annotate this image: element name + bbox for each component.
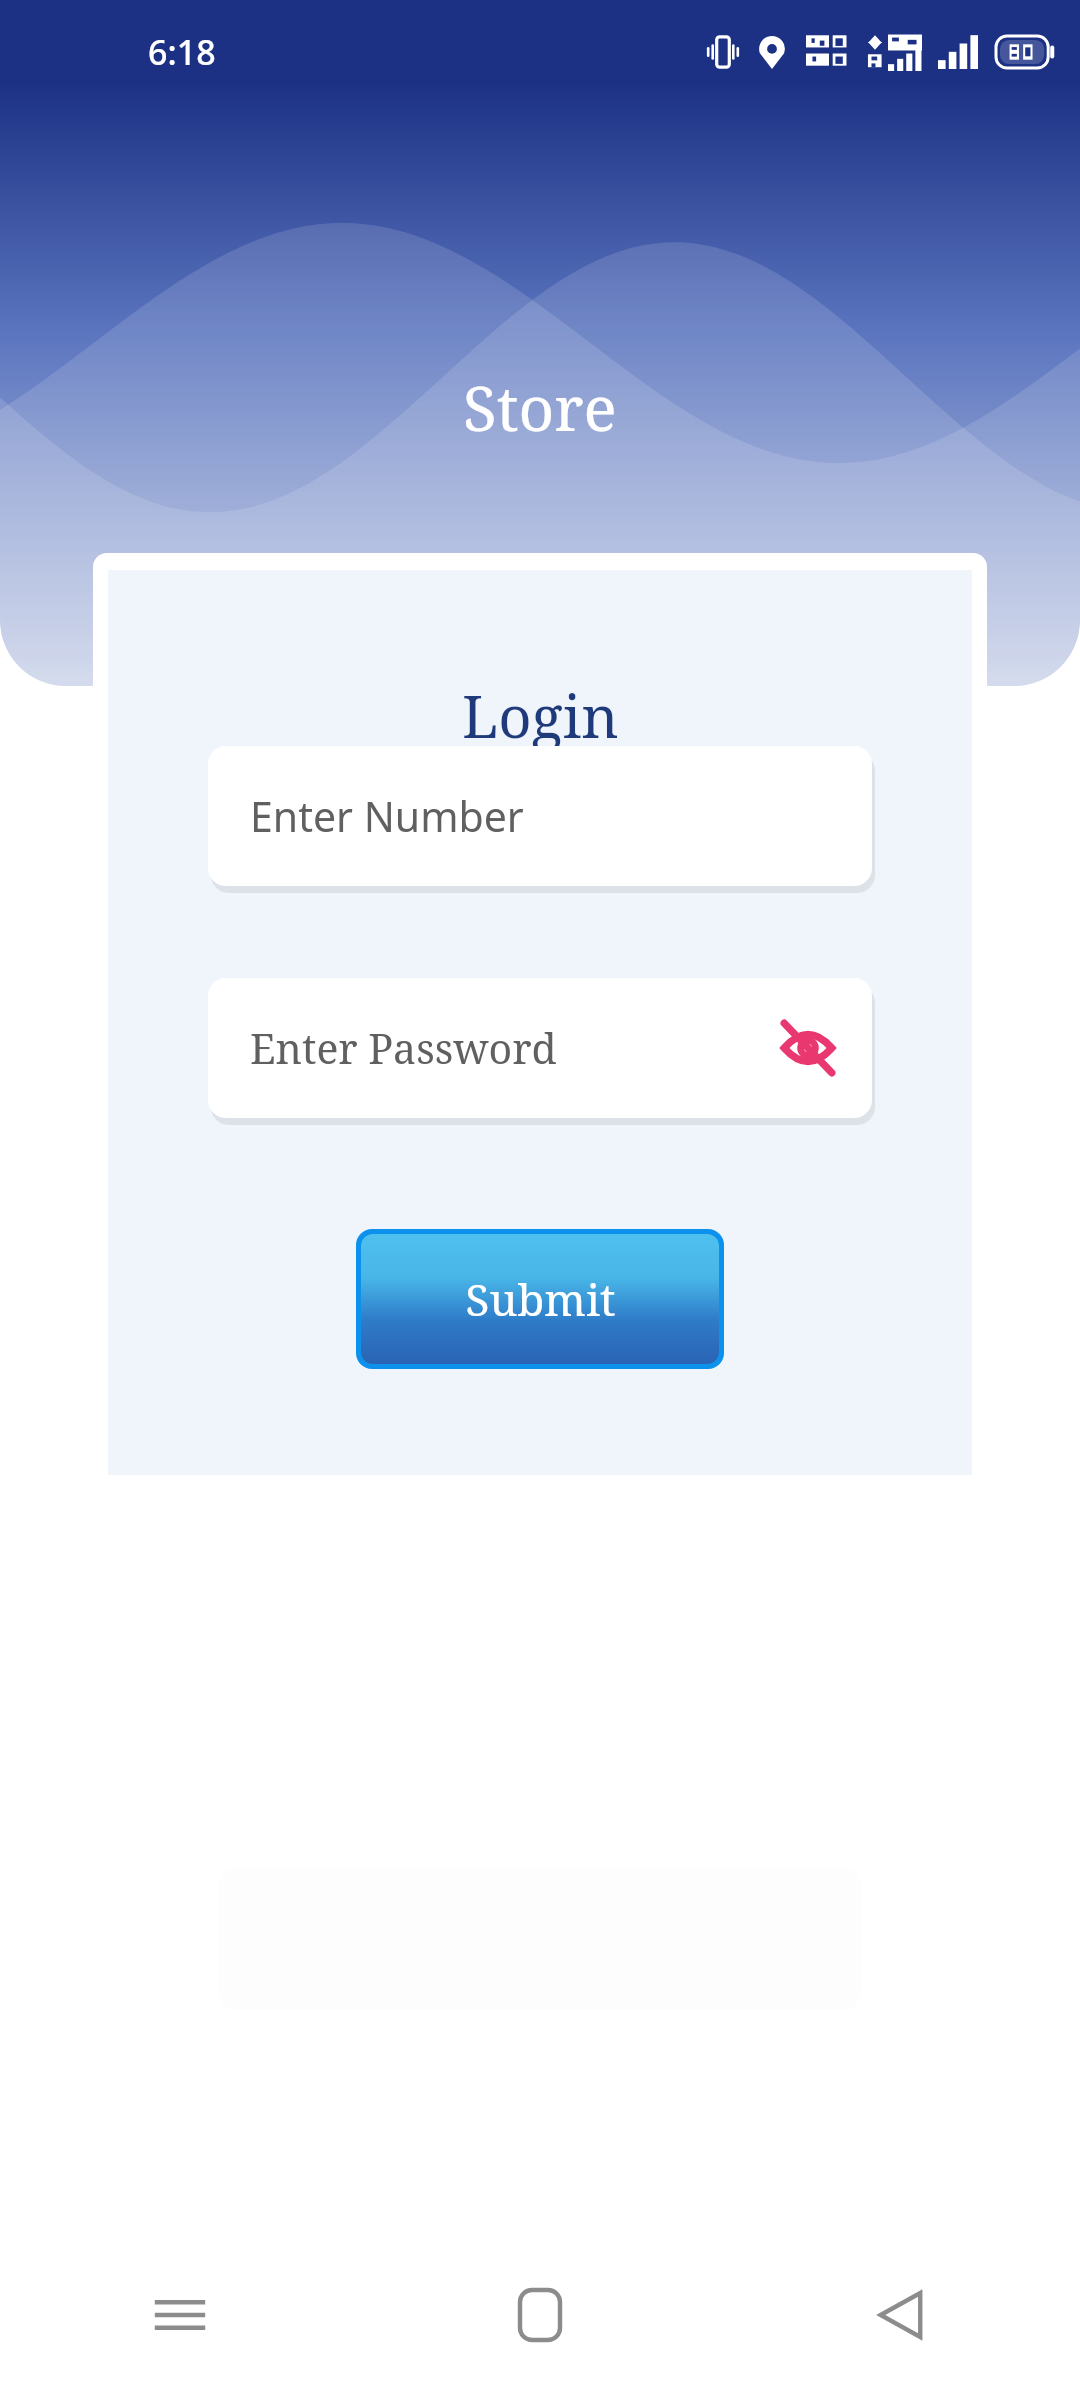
button[interactable]: Back [720,2230,1080,2400]
button[interactable]: Recent apps [0,2230,360,2400]
staticText: Enter Password [250,1020,557,1076]
button[interactable]: Submit [361,1234,719,1364]
button[interactable]: Toggle password visibility [778,1018,838,1078]
button[interactable]: Enter Password [208,978,872,1118]
staticText: Submit [465,1269,616,1329]
staticText: Login [462,676,619,755]
button[interactable]: Home [360,2230,720,2400]
button[interactable]: Enter Number [208,746,872,886]
staticText: 6:18 [148,29,216,75]
staticText: Store [463,365,617,449]
staticText: Enter Number [250,788,524,844]
